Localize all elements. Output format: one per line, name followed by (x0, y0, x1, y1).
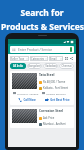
button[interactable]: Chennai (59, 63, 74, 69)
button[interactable]: All India (10, 63, 26, 69)
button[interactable]: Get Best Price (42, 97, 72, 103)
staticText: Chennai (61, 64, 72, 68)
staticText: Get Best Price (50, 98, 70, 102)
staticText: Tata Steel (39, 73, 72, 77)
button[interactable]: Email (49, 56, 63, 61)
staticText: Call Now (23, 98, 36, 102)
button[interactable]: Call Now (12, 97, 42, 103)
button[interactable]: Categories (30, 56, 48, 61)
staticText: Ask Price (43, 116, 72, 120)
button[interactable]: Seller Type (10, 56, 29, 61)
staticText: Search for (20, 7, 64, 19)
staticText: Rs 48,000 / Tonne (43, 80, 72, 84)
staticText: Email (50, 57, 60, 61)
other: Menu (12, 48, 16, 52)
staticText: Products & Services (1, 21, 84, 33)
staticText: TrustSEAL Verified (17, 92, 42, 95)
button[interactable]: Grid view (64, 56, 69, 61)
button[interactable]: Share (69, 56, 74, 61)
staticText: All India (13, 64, 23, 68)
staticText: Categories (31, 57, 45, 61)
button[interactable]: Voice search (70, 47, 72, 52)
staticText: Enter Product / Service (18, 48, 70, 52)
staticText: Mumbai - Andheri (43, 122, 72, 126)
button[interactable]: Bangalore (27, 63, 42, 69)
staticText: Verified Exporter (46, 92, 71, 95)
button[interactable]: Corrosion Steel Sheet (10, 107, 74, 128)
staticText: Vadodara (45, 64, 57, 68)
button[interactable]: Tata Steel (10, 71, 74, 105)
button[interactable]: Menu (10, 46, 74, 53)
staticText: Kolkata - Fort Street (43, 86, 72, 90)
staticText: Corrosion Steel Sheet (39, 109, 72, 113)
staticText: Bangalore (28, 64, 41, 68)
button[interactable]: Vadodara (43, 63, 58, 69)
staticText: Seller Type (11, 57, 26, 61)
